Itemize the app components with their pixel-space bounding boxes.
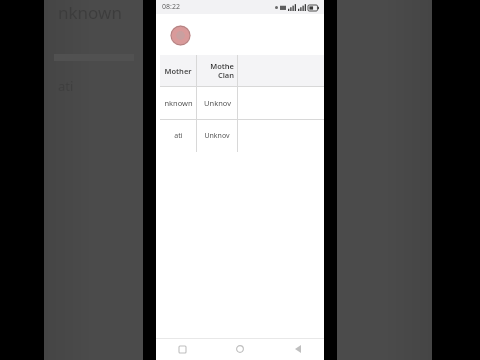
staticText: ati	[174, 131, 183, 141]
staticText: Mothe Clan	[210, 61, 234, 80]
staticText: Mother	[164, 66, 192, 76]
button[interactable]: Home	[232, 341, 248, 357]
button[interactable]: nknown	[160, 87, 324, 119]
button[interactable]: Profile photo	[170, 25, 191, 46]
staticText: nknown	[58, 1, 122, 24]
staticText: Unknov	[204, 98, 231, 108]
button[interactable]: Recents	[174, 341, 190, 357]
staticText: Unknov	[204, 131, 230, 141]
button[interactable]: Back	[290, 341, 306, 357]
staticText: 08:22	[162, 2, 180, 12]
staticText: nknown	[164, 98, 193, 108]
button[interactable]: ati	[160, 120, 324, 152]
